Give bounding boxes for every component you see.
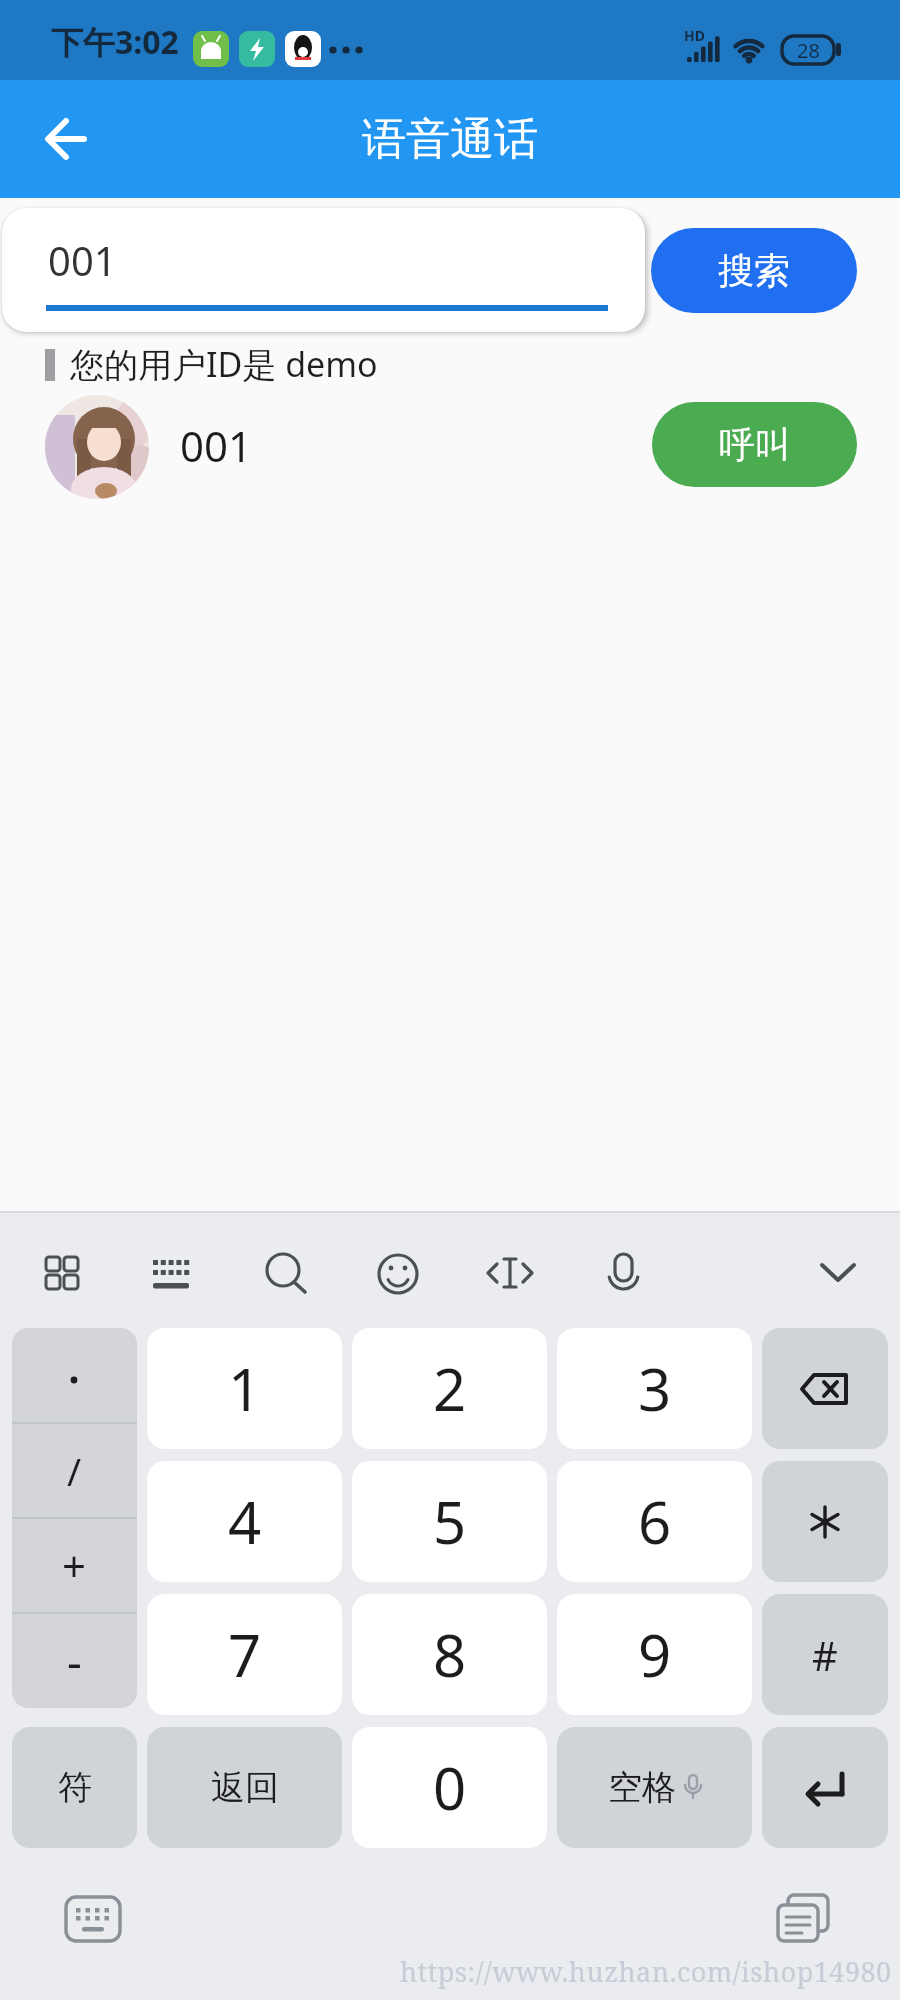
button[interactable] bbox=[364, 1239, 432, 1307]
button[interactable] bbox=[476, 1239, 544, 1307]
staticText: 9 bbox=[638, 1615, 672, 1694]
button[interactable] bbox=[12, 1328, 137, 1423]
staticText: # bbox=[812, 1628, 838, 1682]
staticText: 语音通话 bbox=[362, 112, 538, 167]
button[interactable]: 6 bbox=[557, 1461, 752, 1582]
button[interactable]: 001 bbox=[2, 208, 645, 332]
staticText: 4 bbox=[228, 1482, 262, 1561]
button[interactable] bbox=[12, 1518, 137, 1613]
button[interactable]: 8 bbox=[352, 1594, 547, 1715]
staticText: https://www.huzhan.com/ishop14980 bbox=[400, 1953, 892, 1990]
staticText: 001 bbox=[180, 417, 253, 474]
button[interactable]: 搜索 bbox=[651, 228, 857, 313]
staticText: - bbox=[67, 1629, 82, 1692]
staticText: 呼叫 bbox=[719, 422, 791, 467]
button[interactable] bbox=[804, 1239, 872, 1307]
button[interactable]: 呼叫 bbox=[652, 402, 857, 487]
button[interactable]: 空格 bbox=[557, 1727, 752, 1848]
button[interactable] bbox=[762, 1461, 888, 1582]
button[interactable] bbox=[26, 1239, 94, 1307]
staticText: 001 bbox=[48, 233, 117, 287]
button[interactable] bbox=[589, 1239, 657, 1307]
button[interactable]: 5 bbox=[352, 1461, 547, 1582]
staticText: 您的用户ID是 demo bbox=[70, 341, 378, 387]
button[interactable] bbox=[762, 1328, 888, 1449]
button[interactable]: 2 bbox=[352, 1328, 547, 1449]
button[interactable]: 7 bbox=[147, 1594, 342, 1715]
button[interactable] bbox=[28, 102, 102, 176]
staticText: / bbox=[67, 1445, 82, 1497]
button[interactable]: 3 bbox=[557, 1328, 752, 1449]
button[interactable] bbox=[762, 1727, 888, 1848]
button[interactable]: 1 bbox=[147, 1328, 342, 1449]
button[interactable] bbox=[251, 1239, 319, 1307]
staticText: 返回 bbox=[211, 1766, 279, 1809]
button[interactable]: 4 bbox=[147, 1461, 342, 1582]
button[interactable] bbox=[772, 1891, 836, 1951]
button[interactable]: 9 bbox=[557, 1594, 752, 1715]
button[interactable]: # bbox=[762, 1594, 888, 1715]
staticText: 2 bbox=[433, 1349, 467, 1428]
button[interactable] bbox=[62, 1891, 126, 1951]
staticText: 7 bbox=[228, 1615, 262, 1694]
button[interactable] bbox=[138, 1239, 206, 1307]
staticText: 符 bbox=[58, 1766, 92, 1809]
staticText: + bbox=[62, 1537, 87, 1594]
button[interactable] bbox=[12, 1423, 137, 1518]
staticText: HD bbox=[684, 26, 705, 42]
staticText: 空格 bbox=[608, 1766, 676, 1809]
button[interactable] bbox=[12, 1613, 137, 1708]
button[interactable]: 符 bbox=[12, 1727, 137, 1848]
staticText: 搜索 bbox=[718, 248, 790, 293]
staticText: 3 bbox=[638, 1349, 672, 1428]
staticText: 5 bbox=[433, 1482, 467, 1561]
button[interactable]: 0 bbox=[352, 1727, 547, 1848]
staticText: 28 bbox=[797, 37, 820, 64]
staticText: 6 bbox=[638, 1482, 672, 1561]
staticText: 1 bbox=[228, 1349, 262, 1428]
button[interactable]: 返回 bbox=[147, 1727, 342, 1848]
staticText: 0 bbox=[433, 1748, 467, 1827]
staticText: 8 bbox=[433, 1615, 467, 1694]
staticText: 下午3:02 bbox=[51, 20, 179, 64]
